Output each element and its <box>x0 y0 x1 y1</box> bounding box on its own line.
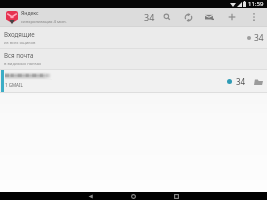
button[interactable]: Вся почта <box>0 49 267 69</box>
staticText: 34 <box>236 76 246 87</box>
button[interactable]: Search <box>162 8 171 26</box>
button[interactable]: Messages <box>205 8 214 26</box>
staticText: Вся почта <box>4 51 34 59</box>
button[interactable]: Compose <box>227 8 236 26</box>
button[interactable]: Back <box>69 192 112 200</box>
button[interactable]: Home <box>112 192 155 200</box>
button[interactable]: 1 GMAIL <box>0 70 267 92</box>
staticText: в видимых папках <box>4 61 42 67</box>
staticText: 34 <box>144 11 155 23</box>
staticText: синхронизация 4 мин. <box>21 19 67 25</box>
staticText: Яндекс <box>21 10 39 17</box>
staticText: 11:59 <box>248 0 264 8</box>
button[interactable]: Входящие <box>0 27 267 48</box>
button[interactable]: More options <box>249 8 258 26</box>
button[interactable]: Refresh <box>184 8 193 26</box>
staticText: 1 GMAIL <box>5 82 23 88</box>
button[interactable]: Яндекс <box>0 8 70 26</box>
button[interactable]: Folders <box>253 76 263 86</box>
staticText: Входящие <box>4 30 35 38</box>
staticText: 34 <box>254 32 264 44</box>
staticText: из всех ящиков <box>4 40 36 46</box>
button[interactable]: Recent apps <box>155 192 198 200</box>
